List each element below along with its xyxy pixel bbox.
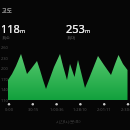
staticText: m — [20, 27, 26, 34]
staticText: 118 — [1, 21, 20, 36]
staticText: 2:30:25 — [121, 107, 130, 112]
staticText: 최대 — [67, 35, 75, 40]
button[interactable]: 고도 — [2, 7, 12, 13]
staticText: 시간(시:분:초) — [56, 119, 81, 124]
staticText: 2:01:11 — [97, 107, 111, 112]
staticText: 최소 — [2, 35, 10, 40]
staticText: m — [85, 27, 91, 34]
staticText: 230 — [1, 56, 8, 61]
staticText: 200 — [1, 66, 8, 71]
staticText: 1:28:10 — [73, 107, 87, 112]
staticText: 170 — [1, 77, 8, 82]
staticText: 253 — [66, 21, 85, 36]
staticText: 260 — [1, 45, 8, 50]
staticText: 고도 — [2, 7, 12, 13]
staticText: 1:00:36 — [50, 107, 64, 112]
staticText: 30:15 — [28, 107, 39, 112]
staticText: 110 — [1, 98, 8, 103]
staticText: 140 — [1, 87, 8, 92]
staticText: 0:00 — [5, 107, 13, 112]
